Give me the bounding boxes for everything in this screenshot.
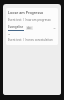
staticText: abc (27, 26, 32, 30)
staticText: Event text / how am progresso (8, 18, 51, 22)
staticText: Loose am Progresso (8, 10, 44, 15)
staticText: Evangelise (8, 25, 24, 29)
button[interactable]: Evangelise (8, 25, 56, 31)
button[interactable]: abc (26, 26, 33, 30)
button[interactable]: Open selector (53, 27, 56, 30)
button[interactable]: Loose am Progresso (6, 8, 58, 45)
staticText: hi (8, 32, 11, 35)
staticText: Event text / hones conceiuleitan (8, 38, 53, 42)
